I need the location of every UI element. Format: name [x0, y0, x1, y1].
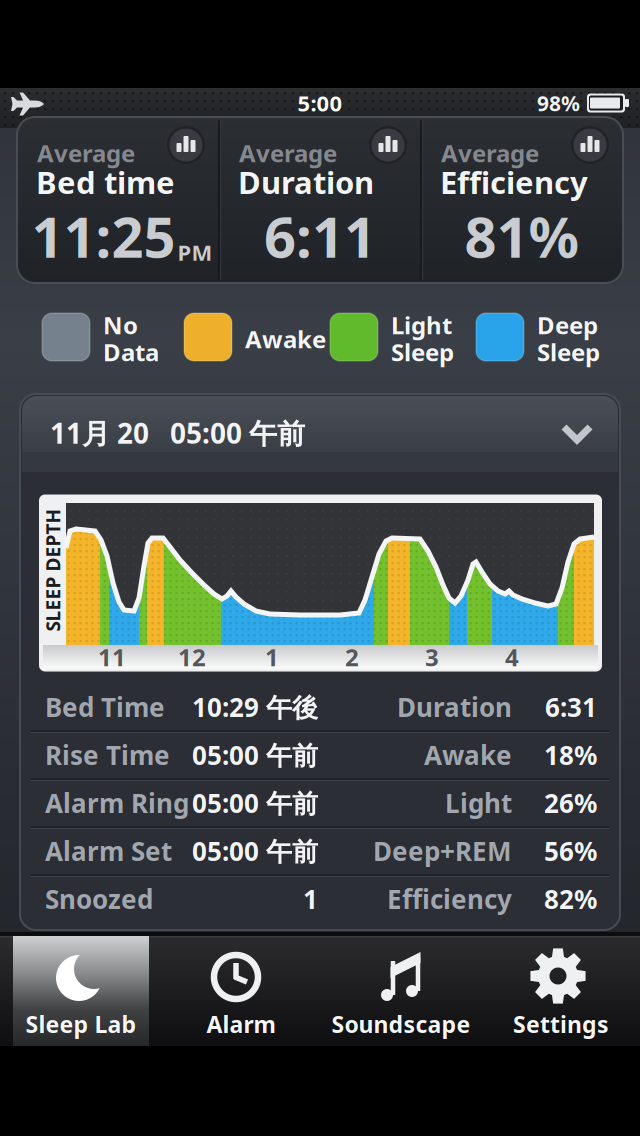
staticText: Light [391, 309, 452, 341]
staticText: Snoozed [45, 881, 153, 917]
staticText: 05:00 午前 [192, 833, 318, 869]
staticText: Sleep Lab [25, 1008, 136, 1040]
staticText: 6:11 [264, 198, 376, 274]
staticText: 3 [425, 641, 439, 673]
staticText: 18% [544, 737, 597, 773]
staticText: Data [103, 336, 159, 368]
staticText: Awake [245, 323, 326, 355]
staticText: 05:00 午前 [192, 737, 318, 773]
staticText: 10:29 午後 [192, 689, 318, 725]
button[interactable]: Statistics chart [369, 126, 407, 164]
staticText: Bed time [36, 161, 175, 203]
staticText: 82% [544, 881, 597, 917]
staticText: Efficiency [440, 161, 588, 203]
staticText: 4 [505, 641, 519, 673]
staticText: Duration [397, 689, 512, 725]
staticText: 1 [265, 641, 279, 673]
staticText: 56% [544, 833, 597, 869]
staticText: 26% [544, 785, 597, 821]
staticText: Alarm Set [45, 833, 172, 869]
staticText: Sleep [391, 336, 454, 368]
staticText: Average [441, 137, 539, 169]
staticText: Duration [238, 161, 374, 203]
button[interactable]: Soundscape [333, 936, 469, 1046]
staticText: 6:31 [545, 689, 597, 725]
staticText: Light [445, 785, 512, 821]
staticText: 1 [303, 881, 318, 917]
staticText: PM [177, 237, 212, 267]
staticText: No [103, 309, 138, 341]
staticText: 05:00 午前 [192, 785, 318, 821]
staticText: Awake [424, 737, 512, 773]
button[interactable]: Statistics chart [167, 126, 205, 164]
button[interactable]: Sleep Lab [13, 936, 149, 1046]
staticText: 11月 20 05:00 午前 [50, 414, 305, 452]
staticText: 5:00 [297, 88, 342, 118]
staticText: Rise Time [45, 737, 170, 773]
button[interactable]: 11月 20 05:00 午前 [22, 396, 618, 470]
button[interactable]: Statistics chart [571, 126, 609, 164]
staticText: Average [37, 137, 135, 169]
staticText: 98% [537, 89, 580, 117]
staticText: Soundscape [331, 1008, 470, 1040]
staticText: 11:25 [31, 198, 175, 274]
staticText: Deep+REM [373, 833, 512, 869]
staticText: Efficiency [387, 881, 512, 917]
staticText: Alarm Ring [45, 785, 189, 821]
button[interactable]: Settings [493, 936, 629, 1046]
button[interactable]: Alarm [173, 936, 309, 1046]
staticText: Sleep [537, 336, 600, 368]
staticText: Average [239, 137, 337, 169]
staticText: 2 [345, 641, 359, 673]
staticText: Deep [537, 309, 598, 341]
staticText: 11 [98, 641, 126, 673]
staticText: SLEEP DEPTH [0, 557, 114, 583]
staticText: Settings [513, 1008, 609, 1040]
staticText: 81% [464, 198, 579, 274]
staticText: 12 [178, 641, 206, 673]
staticText: Bed Time [45, 689, 165, 725]
staticText: Alarm [206, 1008, 275, 1040]
